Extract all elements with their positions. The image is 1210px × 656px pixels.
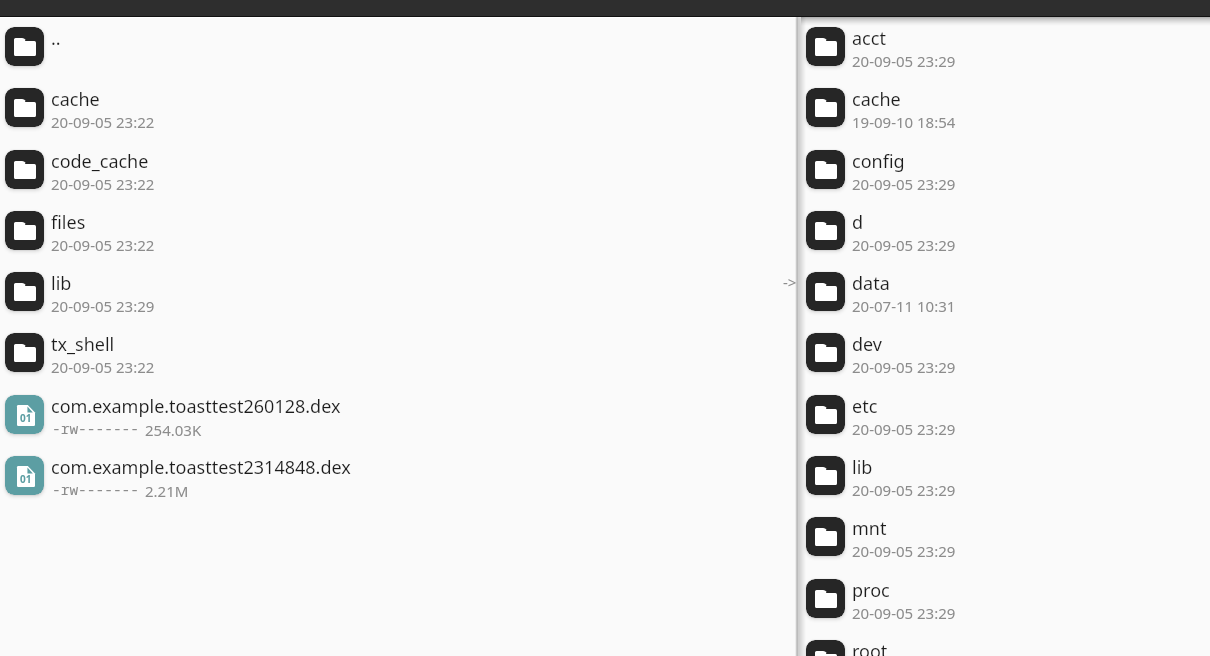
staticText: 20-09-05 23:22 bbox=[51, 357, 155, 377]
staticText: root bbox=[852, 639, 888, 656]
staticText: -rw------- bbox=[52, 479, 139, 499]
button[interactable]: Go to parent folder bbox=[0, 17, 795, 78]
staticText: 20-09-05 23:29 bbox=[852, 357, 956, 377]
staticText: data bbox=[852, 271, 890, 296]
staticText: -> bbox=[783, 272, 797, 292]
staticText: 20-09-05 23:29 bbox=[852, 480, 956, 500]
button[interactable]: Open folder cache bbox=[0, 78, 795, 139]
staticText: dev bbox=[852, 332, 883, 357]
button[interactable]: Open folder code_cache bbox=[0, 140, 795, 201]
staticText: cache bbox=[51, 87, 100, 112]
staticText: 20-09-05 23:29 bbox=[852, 419, 956, 439]
button[interactable]: Open folder mnt bbox=[801, 507, 1210, 568]
button[interactable]: Open file com.example.toasttest260128.de… bbox=[0, 385, 795, 446]
staticText: lib bbox=[51, 271, 72, 296]
staticText: config bbox=[852, 149, 905, 174]
button[interactable]: Open folder root bbox=[801, 630, 1210, 656]
staticText: acct bbox=[852, 26, 886, 51]
button[interactable]: Open folder data bbox=[801, 262, 1210, 323]
button[interactable]: Open folder cache bbox=[801, 78, 1210, 139]
staticText: 20-09-05 23:29 bbox=[852, 174, 956, 194]
button[interactable]: Open folder d bbox=[801, 201, 1210, 262]
button[interactable]: Open file com.example.toasttest2314848.d… bbox=[0, 446, 795, 507]
staticText: -rw------- bbox=[52, 418, 139, 438]
staticText: mnt bbox=[852, 516, 887, 541]
staticText: tx_shell bbox=[51, 332, 115, 357]
staticText: 01 bbox=[20, 472, 32, 486]
staticText: .. bbox=[51, 26, 61, 51]
staticText: files bbox=[51, 210, 86, 235]
staticText: 20-09-05 23:29 bbox=[852, 235, 956, 255]
staticText: 19-09-10 18:54 bbox=[852, 112, 956, 132]
staticText: 20-09-05 23:29 bbox=[852, 603, 956, 623]
button[interactable]: Open folder files bbox=[0, 201, 795, 262]
staticText: 2.21M bbox=[145, 481, 189, 501]
staticText: com.example.toasttest2314848.dex bbox=[51, 455, 351, 480]
staticText: code_cache bbox=[51, 149, 149, 174]
staticText: d bbox=[852, 210, 864, 235]
staticText: lib bbox=[852, 455, 873, 480]
staticText: cache bbox=[852, 87, 901, 112]
staticText: 20-07-11 10:31 bbox=[852, 296, 956, 316]
staticText: com.example.toasttest260128.dex bbox=[51, 394, 341, 419]
staticText: 01 bbox=[20, 411, 32, 425]
button[interactable]: Open folder tx_shell bbox=[0, 323, 795, 384]
button[interactable]: Open folder proc bbox=[801, 569, 1210, 630]
staticText: 20-09-05 23:22 bbox=[51, 112, 155, 132]
button[interactable]: Open folder lib bbox=[0, 262, 795, 323]
staticText: 20-09-05 23:22 bbox=[51, 174, 155, 194]
staticText: 20-09-05 23:22 bbox=[51, 235, 155, 255]
button[interactable]: Open folder acct bbox=[801, 17, 1210, 78]
button[interactable]: Open folder dev bbox=[801, 323, 1210, 384]
button[interactable]: Open folder config bbox=[801, 140, 1210, 201]
staticText: 20-09-05 23:29 bbox=[852, 541, 956, 561]
button[interactable]: Open folder lib bbox=[801, 446, 1210, 507]
button[interactable]: Open folder etc bbox=[801, 385, 1210, 446]
staticText: etc bbox=[852, 394, 878, 419]
staticText: 20-09-05 23:29 bbox=[51, 296, 155, 316]
staticText: 254.03K bbox=[145, 420, 202, 440]
staticText: 20-09-05 23:29 bbox=[852, 51, 956, 71]
staticText: proc bbox=[852, 578, 890, 603]
